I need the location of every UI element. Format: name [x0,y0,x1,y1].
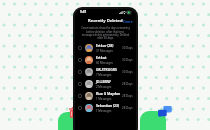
button[interactable]: Select conversation [75,90,136,102]
staticText: 60 Messages [96,61,113,65]
staticText: 30 Days [122,46,133,50]
staticText: 28 Days [122,106,133,110]
other: Select conversation [78,70,82,74]
staticText: 30 Days [122,58,133,62]
other: Select conversation [78,82,82,86]
button[interactable]: Select conversation [75,42,136,54]
staticText: GR-STRUGRS [96,67,117,72]
staticText: JD-LBSNF [96,79,112,84]
staticText: 30 Days [122,70,133,74]
staticText: Sebastian (23) [96,103,120,108]
staticText: Riza G Maydan Ankut [96,91,122,96]
staticText: 7 Messages [96,73,112,77]
staticText: Done [123,19,133,24]
staticText: 1 Messages [96,97,112,101]
other: Select conversation [78,58,82,62]
button[interactable]: Select conversation [75,66,136,78]
other: Select conversation [78,106,82,110]
staticText: Ertkur (28) [96,43,114,48]
staticText: 31 Messages [96,49,113,53]
staticText: 2 Messages [96,85,112,89]
staticText: 1 Messages [96,109,112,113]
button[interactable]: Done [120,18,136,25]
staticText: 9:41 [80,10,87,14]
staticText: 28 Days [122,94,133,98]
staticText: Recently Deleted [88,18,123,24]
staticText: Conversations show the days remaining be… [80,26,131,39]
button[interactable]: Select conversation [75,102,136,114]
button[interactable]: Select conversation [75,78,136,90]
other: Select conversation [78,94,82,98]
staticText: 28 Days [122,82,133,86]
staticText: Ertkut [96,55,107,60]
other: Select conversation [78,46,82,50]
button[interactable]: Select conversation [75,54,136,66]
